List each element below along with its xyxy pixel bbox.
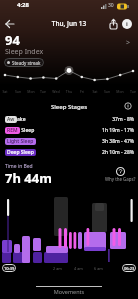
staticText: Sat	[0, 89, 10, 94]
button[interactable]	[4, 18, 16, 30]
staticText: Wed	[51, 89, 61, 94]
staticText: 10:39	[4, 266, 15, 271]
staticText: Light Sleep	[7, 138, 34, 145]
staticText: 06:23	[124, 266, 135, 271]
staticText: >	[126, 38, 131, 48]
staticText: 2 am	[53, 266, 62, 271]
staticText: Thu	[64, 89, 74, 94]
staticText: 2h 10m - 28%	[0, 149, 134, 156]
staticText: Deep Sleep	[7, 149, 34, 156]
staticText: Time in Bed	[5, 163, 33, 170]
staticText: 1h 19m - 17%	[0, 127, 134, 134]
staticText: Aw	[7, 116, 15, 123]
staticText: 4 am	[74, 266, 83, 271]
staticText: Thu, Jun 13	[0, 19, 138, 28]
staticText: 3h 38m - 47%	[0, 138, 134, 145]
staticText: Why the Gaps?	[105, 176, 136, 182]
staticText: Sleep	[20, 127, 35, 134]
staticText: REM	[7, 127, 18, 134]
button[interactable]: Aw	[5, 115, 26, 123]
staticText: 4:28	[17, 1, 29, 9]
staticText: 37m - 8%	[0, 116, 134, 123]
staticText: Sun	[102, 89, 112, 94]
button[interactable]: Deep Sleep	[5, 148, 36, 156]
staticText: i	[126, 20, 128, 28]
staticText: Sleep Stages	[0, 103, 138, 111]
staticText: ake	[17, 116, 26, 123]
staticText: 94	[5, 31, 20, 49]
staticText: Mon	[26, 89, 36, 94]
staticText: Tue	[128, 89, 138, 94]
staticText: 30	[108, 2, 114, 9]
staticText: 7h 44m	[5, 169, 52, 187]
staticText: Sleep Index	[5, 47, 44, 57]
button[interactable]: i	[122, 19, 132, 29]
staticText: 6 am	[94, 266, 103, 271]
button[interactable]: REM	[5, 126, 35, 134]
button[interactable]: Why the Gaps?	[100, 167, 138, 182]
staticText: Fri	[77, 89, 87, 94]
staticText: Steady streak	[12, 60, 41, 66]
staticText: Mon	[115, 89, 125, 94]
button[interactable]	[108, 18, 119, 30]
button[interactable]: Steady streak	[4, 58, 44, 67]
staticText: Sun	[13, 89, 23, 94]
button[interactable]: Movements	[0, 288, 138, 295]
staticText: Sat	[90, 89, 100, 94]
button[interactable]	[124, 102, 132, 110]
button[interactable]: Light Sleep	[5, 137, 36, 145]
staticText: Tue	[38, 89, 48, 94]
